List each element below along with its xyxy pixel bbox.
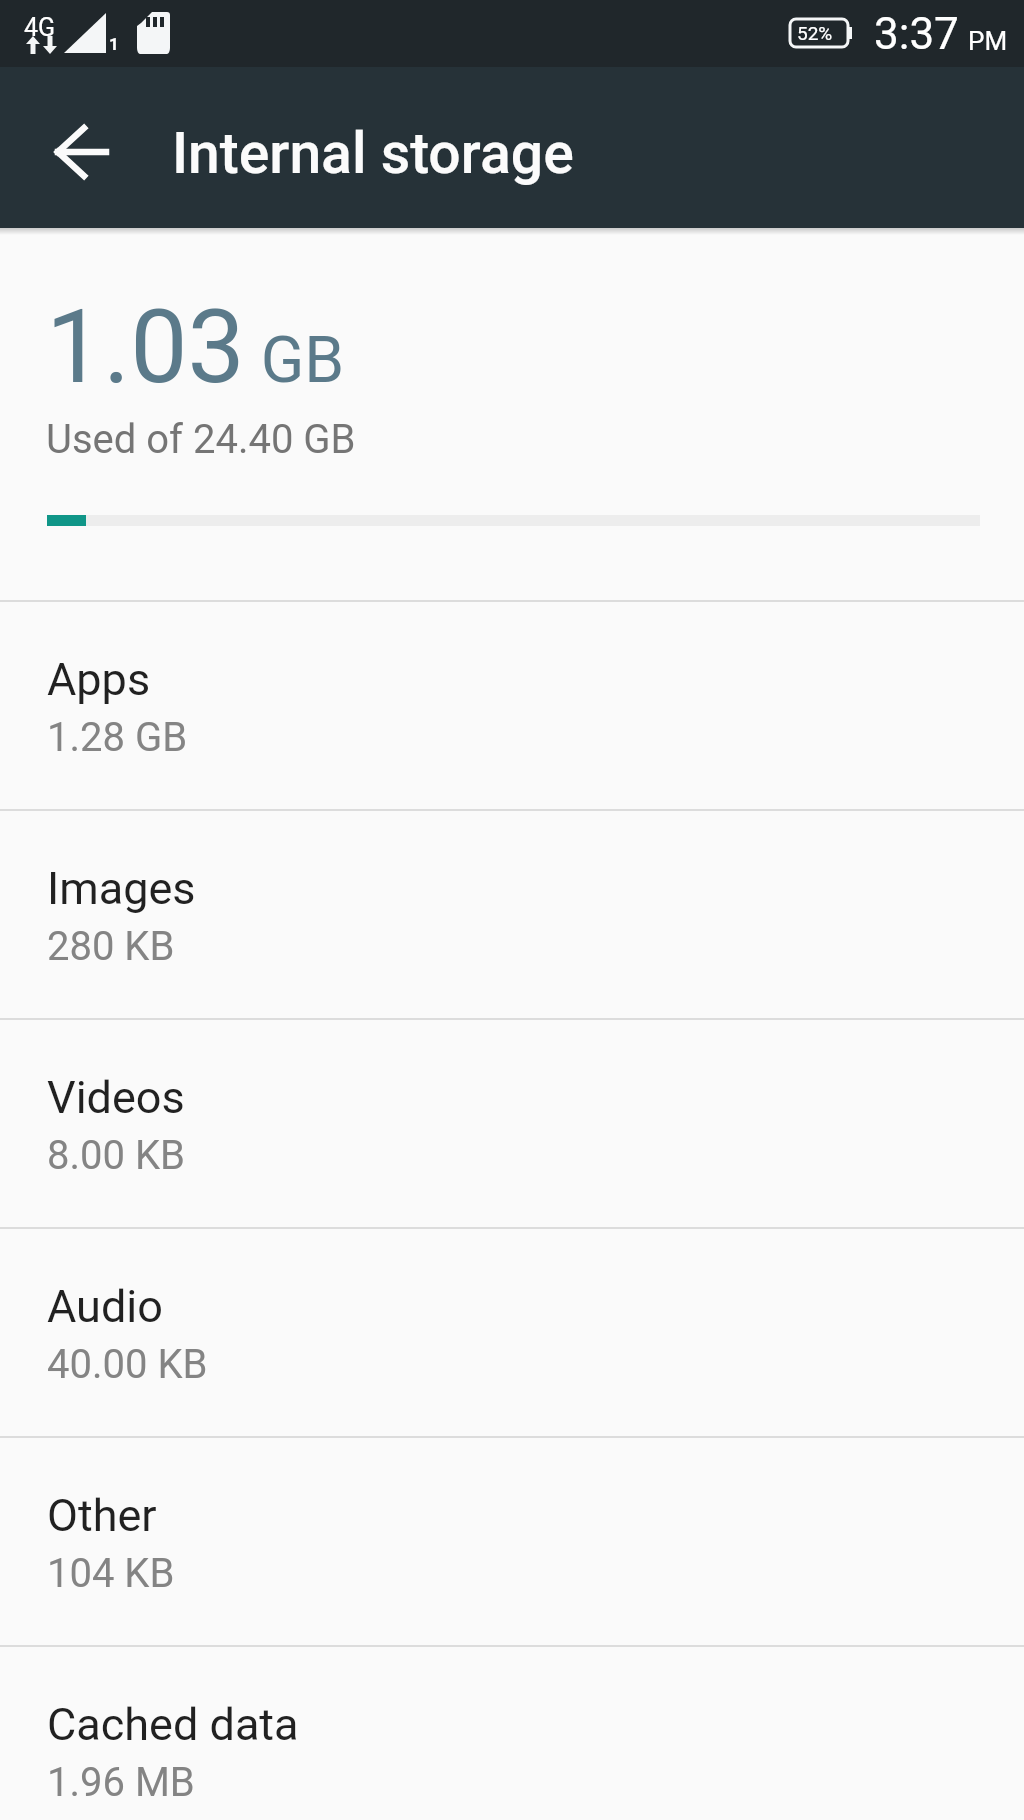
- button[interactable]: Apps: [0, 600, 1024, 809]
- staticText: 1.96 MB: [47, 1759, 195, 1806]
- staticText: 1.28 GB: [47, 714, 188, 761]
- staticText: 40.00 KB: [47, 1341, 208, 1388]
- button[interactable]: Cached data: [0, 1645, 1024, 1820]
- button[interactable]: Videos: [0, 1018, 1024, 1227]
- staticText: Used of 24.40 GB: [46, 416, 356, 463]
- button[interactable]: Images: [0, 809, 1024, 1018]
- staticText: 1.03 GB: [46, 287, 345, 407]
- staticText: Other: [47, 1489, 157, 1542]
- staticText: Cached data: [47, 1698, 299, 1751]
- staticText: 8.00 KB: [47, 1132, 185, 1179]
- staticText: Videos: [47, 1071, 185, 1124]
- button[interactable]: Other: [0, 1436, 1024, 1645]
- staticText: 3:37: [874, 8, 959, 60]
- staticText: Apps: [47, 653, 151, 706]
- button[interactable]: Audio: [0, 1227, 1024, 1436]
- staticText: 280 KB: [47, 923, 175, 970]
- staticText: 4G: [24, 13, 56, 42]
- staticText: 1: [109, 34, 119, 54]
- staticText: Images: [47, 862, 196, 915]
- staticText: Audio: [47, 1280, 163, 1333]
- button[interactable]: [47, 117, 117, 187]
- staticText: PM: [968, 26, 1008, 56]
- staticText: 52%: [797, 22, 833, 44]
- staticText: 104 KB: [47, 1550, 175, 1597]
- staticText: Internal storage: [172, 120, 574, 187]
